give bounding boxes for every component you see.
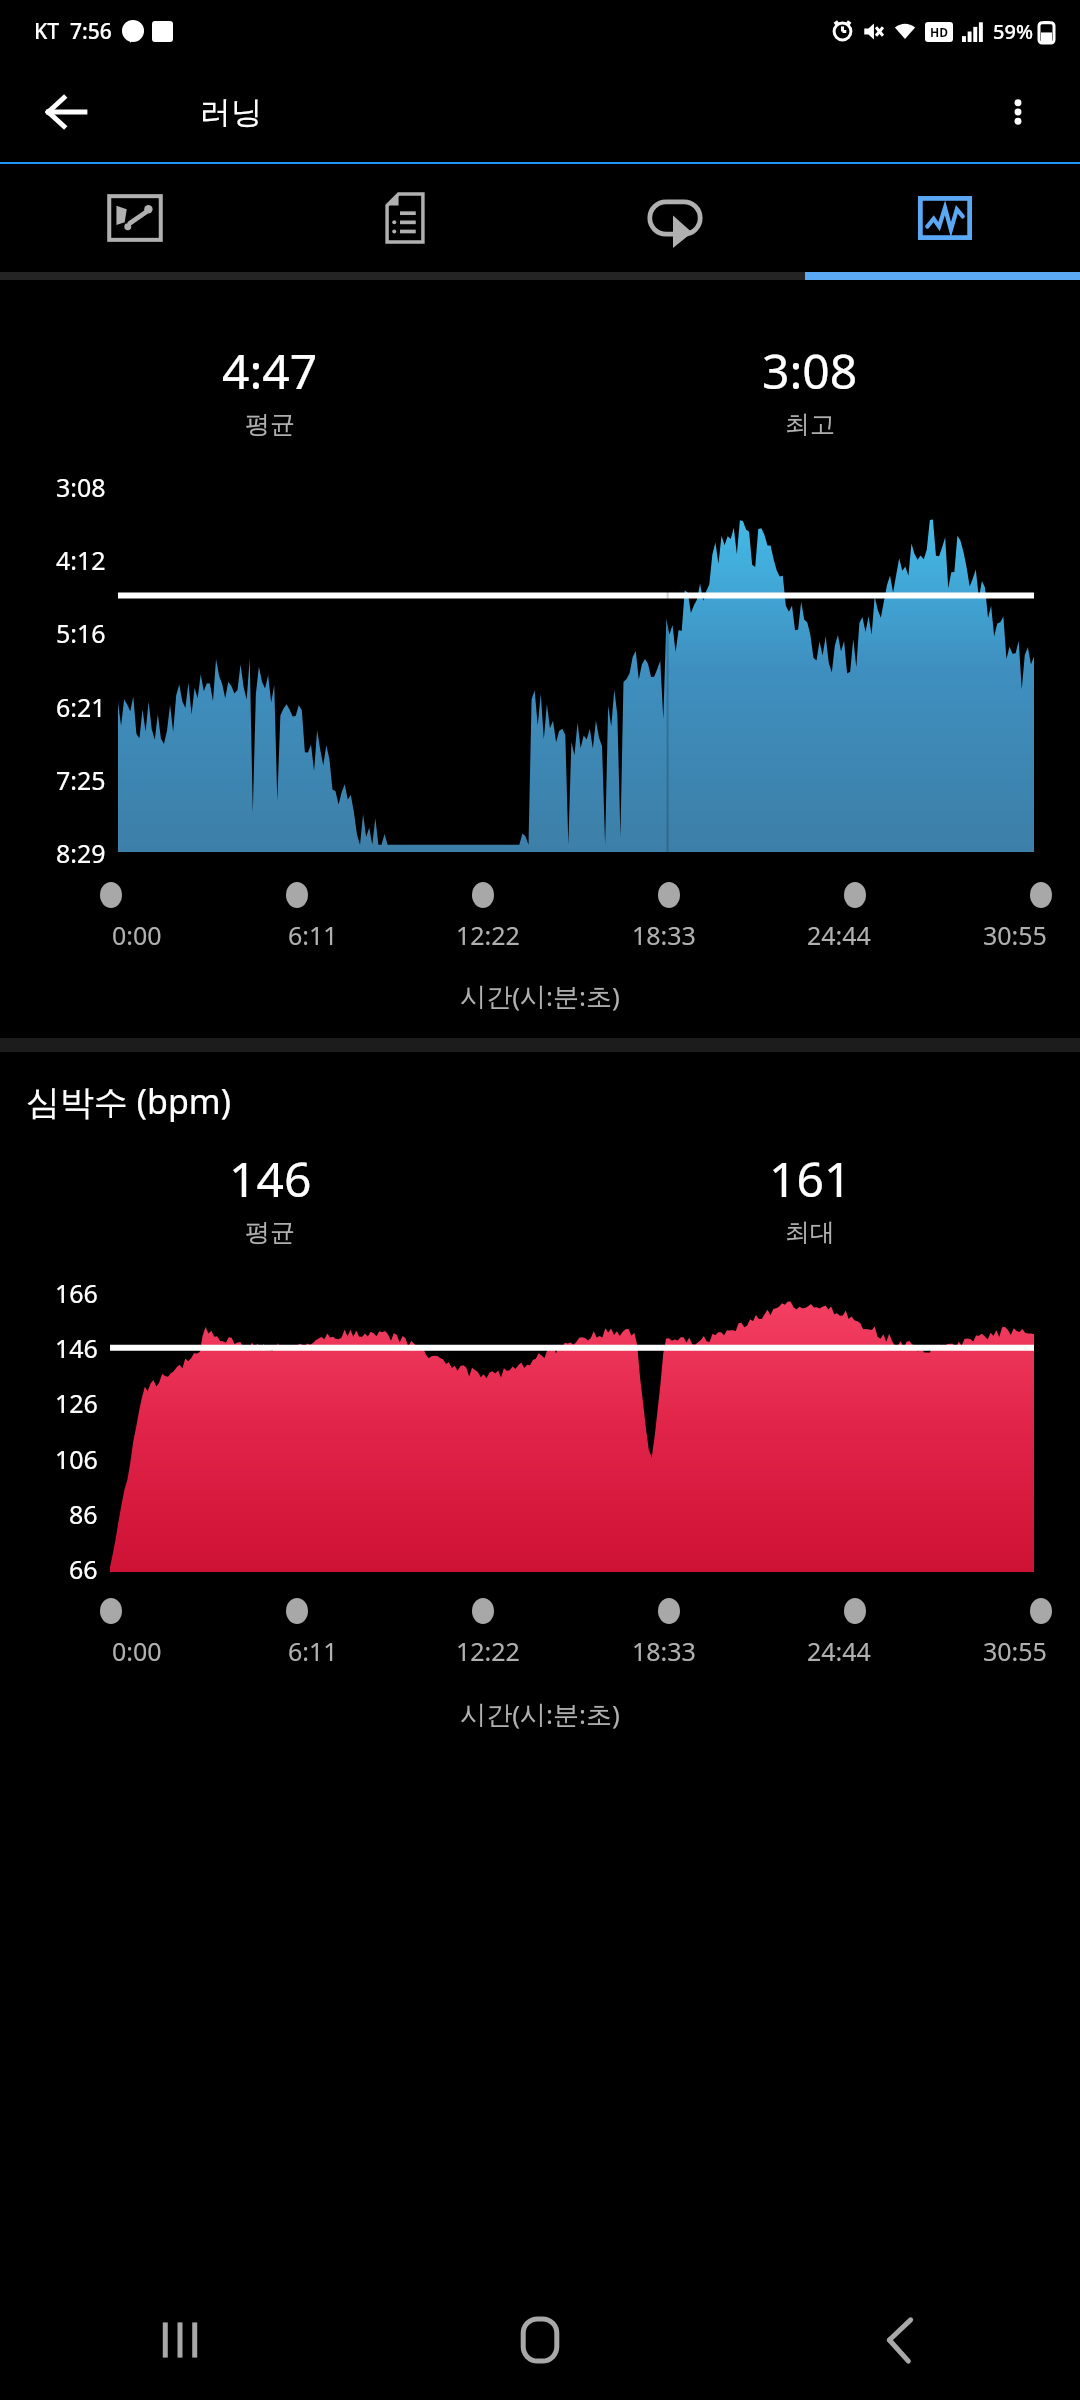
staticText: 최대 xyxy=(785,1217,835,1248)
staticText: 146 xyxy=(55,1331,98,1365)
staticText: HD xyxy=(930,24,948,40)
staticText: 86 xyxy=(69,1497,98,1531)
button[interactable]: Charts xyxy=(810,164,1080,272)
button[interactable]: Details xyxy=(270,164,540,272)
staticText: 러닝 xyxy=(200,93,262,132)
button[interactable]: Back xyxy=(30,76,102,148)
staticText: 24:44 xyxy=(807,918,871,952)
staticText: 12:22 xyxy=(456,918,520,952)
staticText: 3:08 xyxy=(56,470,106,504)
staticText: 126 xyxy=(55,1386,98,1420)
staticText: 30:55 xyxy=(983,918,1047,952)
staticText: 18:33 xyxy=(632,918,696,952)
staticText: 3:08 xyxy=(762,338,858,403)
staticText: 심박수 (bpm) xyxy=(26,1078,231,1124)
staticText: 5:16 xyxy=(56,616,106,650)
button[interactable]: Recents xyxy=(0,2280,360,2400)
staticText: 6:11 xyxy=(288,918,338,952)
staticText: 12:22 xyxy=(456,1634,520,1668)
staticText: 4:47 xyxy=(222,338,318,403)
staticText: 6:11 xyxy=(288,1634,338,1668)
staticText: 18:33 xyxy=(632,1634,696,1668)
button[interactable]: More options xyxy=(982,76,1054,148)
staticText: 6:21 xyxy=(56,690,106,724)
staticText: 4:12 xyxy=(56,543,106,577)
button[interactable]: Back xyxy=(720,2280,1080,2400)
staticText: 66 xyxy=(69,1552,98,1586)
staticText: 166 xyxy=(55,1276,98,1310)
staticText: 평균 xyxy=(245,409,295,440)
staticText: 24:44 xyxy=(807,1634,871,1668)
staticText: 7:25 xyxy=(56,763,106,797)
staticText: 8:29 xyxy=(56,836,106,870)
staticText: 최고 xyxy=(785,409,835,440)
button[interactable]: Laps xyxy=(540,164,810,272)
button[interactable]: Home xyxy=(360,2280,720,2400)
button[interactable]: Map xyxy=(0,164,270,272)
staticText: 30:55 xyxy=(983,1634,1047,1668)
staticText: 161 xyxy=(769,1146,852,1211)
staticText: 시간(시:분:초) xyxy=(0,1696,1080,1732)
staticText: 평균 xyxy=(245,1217,295,1248)
staticText: 0:00 xyxy=(112,1634,162,1668)
staticText: 106 xyxy=(55,1442,98,1476)
staticText: KT xyxy=(34,17,60,46)
staticText: 146 xyxy=(229,1146,312,1211)
staticText: 59% xyxy=(993,18,1033,45)
staticText: 0:00 xyxy=(112,918,162,952)
staticText: 시간(시:분:초) xyxy=(0,978,1080,1014)
staticText: 7:56 xyxy=(70,17,112,46)
